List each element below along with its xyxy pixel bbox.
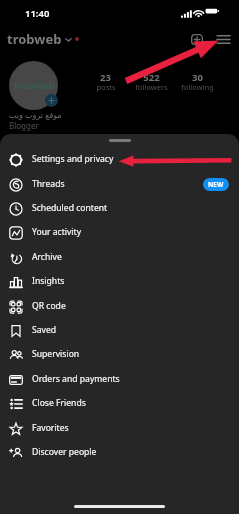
staticText: 11:40 <box>25 7 50 20</box>
staticText: Insights <box>32 275 65 287</box>
staticText: Close Friends <box>32 397 86 409</box>
staticText: Blogger <box>9 120 39 131</box>
button[interactable]: New post <box>185 28 208 51</box>
staticText: Threads <box>32 178 65 190</box>
button[interactable]: Add <box>45 94 58 107</box>
staticText: 30 <box>192 71 203 84</box>
button[interactable]: QR code <box>0 294 239 318</box>
button[interactable]: Insights <box>0 269 239 293</box>
button[interactable]: Threads <box>0 172 239 196</box>
button[interactable]: Menu <box>212 28 235 51</box>
staticText: following <box>181 82 214 92</box>
staticText: موقع تروب ويب <box>9 109 62 120</box>
staticText: Archive <box>32 251 62 263</box>
staticText: Favorites <box>32 422 69 434</box>
button[interactable]: Orders and payments <box>0 367 239 391</box>
staticText: Orders and payments <box>32 373 120 385</box>
button[interactable]: Supervision <box>0 342 239 366</box>
button[interactable]: Favorites <box>0 416 239 440</box>
button[interactable]: Close Friends <box>0 391 239 415</box>
button[interactable]: Scheduled content <box>0 196 239 220</box>
staticText: 522 <box>143 71 160 84</box>
button[interactable]: Profile photo <box>9 61 58 110</box>
button[interactable]: Your activity <box>0 220 239 244</box>
staticText: Scheduled content <box>32 202 108 214</box>
staticText: followers <box>135 82 168 92</box>
staticText: trobweb <box>7 30 62 48</box>
staticText: Supervision <box>32 348 80 360</box>
button[interactable]: Archive <box>0 245 239 269</box>
staticText: Discover people <box>32 446 97 458</box>
button[interactable]: trobweb <box>7 30 79 48</box>
button[interactable]: Discover people <box>0 440 239 464</box>
staticText: posts <box>96 82 116 92</box>
staticText: QR code <box>32 300 66 312</box>
button[interactable]: Saved <box>0 318 239 342</box>
staticText: 23 <box>100 71 111 84</box>
staticText: NEW <box>208 180 224 189</box>
staticText: TrobWeb <box>13 79 55 92</box>
staticText: Settings and privacy <box>32 153 114 165</box>
staticText: Your activity <box>32 226 82 238</box>
button[interactable]: Settings and privacy <box>0 147 239 171</box>
staticText: Saved <box>32 324 57 336</box>
